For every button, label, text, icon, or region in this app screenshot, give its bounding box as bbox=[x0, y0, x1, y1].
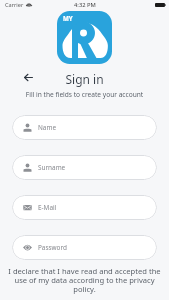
staticText: Password bbox=[38, 243, 67, 252]
button[interactable]: E-Mail bbox=[12, 195, 157, 220]
staticText: Carrier bbox=[5, 1, 24, 9]
button[interactable]: Surname bbox=[12, 155, 157, 180]
staticText: Name bbox=[38, 123, 57, 132]
staticText: 4:32 PM bbox=[74, 1, 96, 9]
staticText: Sign in bbox=[0, 71, 169, 87]
button[interactable]: Back bbox=[19, 68, 37, 86]
staticText: Fill in the fields to create your accoun… bbox=[0, 90, 169, 99]
staticText: I declare that I have read and accepted … bbox=[4, 266, 165, 294]
staticText: E-Mail bbox=[38, 203, 57, 212]
button[interactable]: Password bbox=[12, 235, 157, 260]
staticText: MY bbox=[63, 14, 73, 22]
button[interactable]: Name bbox=[12, 115, 157, 140]
staticText: Surname bbox=[38, 163, 66, 172]
